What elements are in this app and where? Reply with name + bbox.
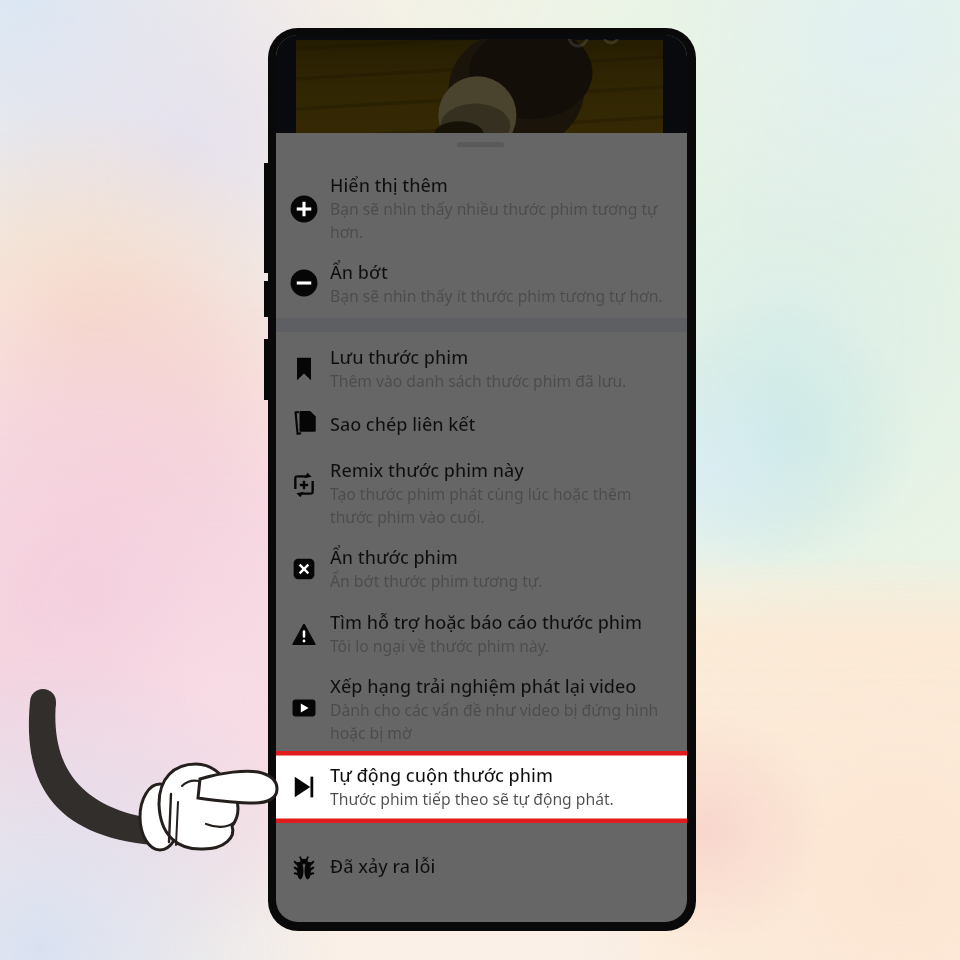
other: Lưu (290, 355, 318, 383)
button[interactable] (292, 452, 652, 533)
other: Sao chép liên kết (290, 407, 318, 435)
staticText: Xếp hạng trải nghiệm phát lại video (330, 674, 637, 699)
other: Ẩn (290, 555, 318, 583)
other: Video (290, 694, 318, 722)
staticText: Hiển thị thêm (330, 173, 448, 198)
other: Con trỏ tay (0, 0, 960, 960)
staticText: Tự động cuộn thước phim (330, 763, 553, 788)
staticText: Tạo thước phim phát cùng lúc hoặc thêm t… (330, 483, 642, 528)
button[interactable] (292, 406, 680, 441)
staticText: Thước phim tiếp theo sẽ tự động phát. (330, 788, 614, 809)
staticText: Lưu thước phim (330, 345, 469, 370)
staticText: Bạn sẽ nhìn thấy nhiều thước phim tương … (330, 198, 660, 243)
other: Tìm hỗ trợ hoặc báo cáo (290, 620, 318, 648)
staticText: Tôi lo ngại về thước phim này. (330, 635, 550, 656)
staticText: Thêm vào danh sách thước phim đã lưu. (330, 370, 627, 391)
button[interactable] (292, 848, 680, 883)
staticText: Dành cho các vấn đề như video bị đứng hì… (330, 699, 663, 744)
staticText: Remix thước phim này (330, 458, 524, 483)
other: Tự động cuộn thước phim (290, 773, 318, 801)
staticText: Đã xảy ra lỗi (330, 854, 436, 879)
button[interactable] (292, 539, 680, 597)
staticText: Bạn sẽ nhìn thấy ít thước phim tương tự … (330, 285, 663, 306)
other: Remix thước phim (290, 471, 318, 499)
button[interactable] (292, 604, 680, 662)
button[interactable] (292, 339, 680, 397)
button[interactable] (292, 668, 673, 749)
button[interactable] (292, 254, 680, 312)
staticText: Ẩn thước phim (330, 545, 458, 570)
staticText: Ẩn bớt thước phim tương tự. (330, 570, 543, 591)
button[interactable] (292, 757, 680, 815)
staticText: Sao chép liên kết (330, 412, 476, 437)
staticText: Tìm hỗ trợ hoặc báo cáo thước phim (330, 610, 643, 635)
staticText: Ẩn bớt (330, 260, 388, 285)
other: Hiển thị thêm (290, 195, 318, 223)
other: Đã xảy ra lỗi (290, 857, 318, 885)
button[interactable] (292, 167, 670, 248)
other: Ẩn bớt (290, 269, 318, 297)
